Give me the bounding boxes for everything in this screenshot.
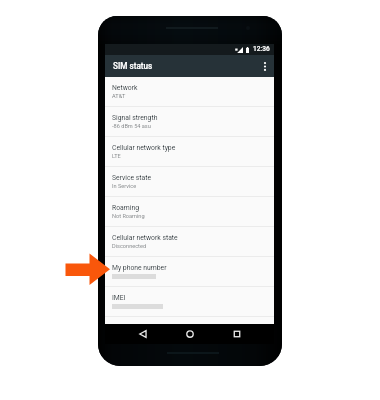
button[interactable]: My phone number	[105, 257, 274, 286]
staticText: Service state	[112, 174, 152, 182]
staticText: AT&T	[112, 93, 126, 100]
staticText: Signal strength	[112, 114, 158, 122]
button[interactable]: Cellular network state	[105, 227, 274, 256]
staticText: Disconnected	[112, 243, 147, 250]
button[interactable]: IMEI	[105, 287, 274, 316]
staticText: Network	[112, 84, 138, 92]
staticText: -86 dBm 54 asu	[112, 123, 151, 130]
button[interactable]: Signal strength	[105, 107, 274, 136]
button[interactable]: Roaming	[105, 197, 274, 226]
staticText: SIM status	[113, 61, 153, 71]
staticText: In Service	[112, 183, 137, 190]
button[interactable]: Recent apps	[226, 324, 248, 344]
button[interactable]: Home	[179, 324, 201, 344]
button[interactable]: Network	[105, 77, 274, 106]
staticText: LTE	[112, 153, 121, 160]
staticText: 12:36	[253, 45, 270, 53]
staticText: Roaming	[112, 204, 139, 212]
staticText: Cellular network type	[112, 144, 176, 152]
button[interactable]: Back	[132, 324, 154, 344]
staticText: My phone number	[112, 264, 167, 272]
staticText: IMEI	[112, 294, 126, 302]
staticText: Cellular network state	[112, 234, 178, 242]
button[interactable]: Cellular network type	[105, 137, 274, 166]
staticText: Not Roaming	[112, 213, 145, 220]
button[interactable]: Service state	[105, 167, 274, 196]
button[interactable]: More options	[256, 55, 274, 77]
